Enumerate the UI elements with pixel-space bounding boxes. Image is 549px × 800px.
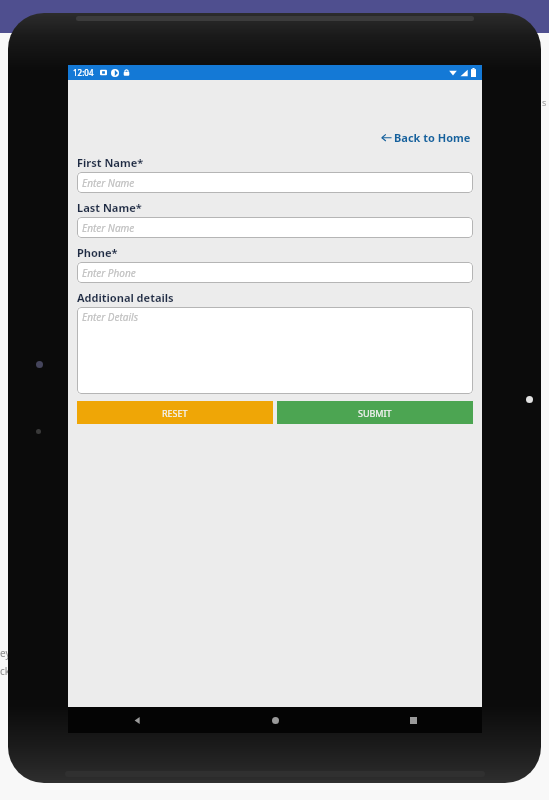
staticText: Back to Home [394, 130, 471, 145]
staticText: Additional details [77, 290, 174, 305]
staticText: cks [0, 664, 15, 678]
button[interactable]: Back [68, 707, 206, 733]
button[interactable]: Enter Name [77, 217, 473, 238]
staticText: Last Name* [77, 200, 142, 215]
button[interactable]: Enter Details [77, 307, 473, 394]
staticText: Enter Phone [82, 266, 136, 280]
staticText: s [542, 96, 547, 108]
button[interactable]: SUBMIT [277, 401, 473, 424]
staticText: RESET [162, 407, 188, 419]
staticText: Enter Details [82, 310, 138, 324]
button[interactable]: Back to Home [379, 129, 473, 146]
staticText: Phone* [77, 245, 118, 260]
button[interactable]: RESET [77, 401, 273, 424]
button[interactable]: Recent apps [344, 707, 482, 733]
button[interactable]: Enter Name [77, 172, 473, 193]
button[interactable]: Home [206, 707, 344, 733]
staticText: ey [0, 646, 11, 660]
staticText: Enter Name [82, 176, 135, 190]
staticText: SUBMIT [358, 407, 392, 419]
staticText: 12:04 [73, 67, 94, 78]
button[interactable]: Enter Phone [77, 262, 473, 283]
staticText: Enter Name [82, 221, 135, 235]
staticText: First Name* [77, 155, 144, 170]
